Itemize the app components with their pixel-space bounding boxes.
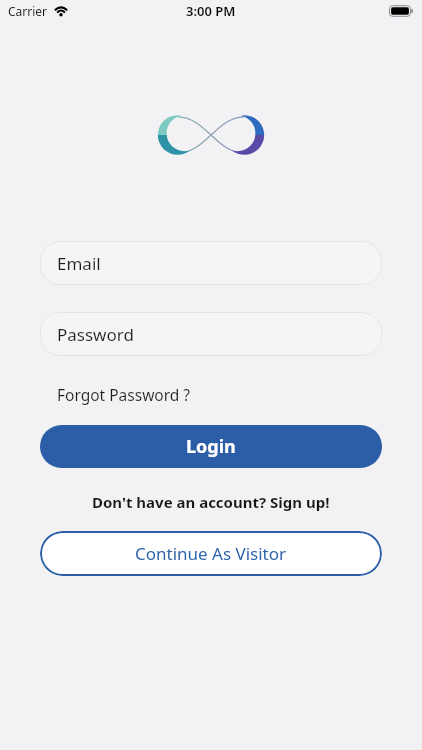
staticText: Password: [57, 323, 134, 346]
button[interactable]: Continue As Visitor: [40, 531, 382, 576]
staticText: Carrier: [8, 3, 48, 19]
button[interactable]: Forgot Password ?: [57, 384, 191, 405]
button[interactable]: Password: [40, 312, 382, 356]
staticText: Login: [186, 434, 236, 459]
button[interactable]: Login: [40, 425, 382, 468]
staticText: Email: [57, 252, 101, 275]
button[interactable]: Don't have an account? Sign up!: [92, 492, 330, 512]
button[interactable]: Email: [40, 241, 382, 285]
staticText: 3:00 PM: [186, 2, 236, 20]
staticText: Continue As Visitor: [135, 542, 287, 565]
